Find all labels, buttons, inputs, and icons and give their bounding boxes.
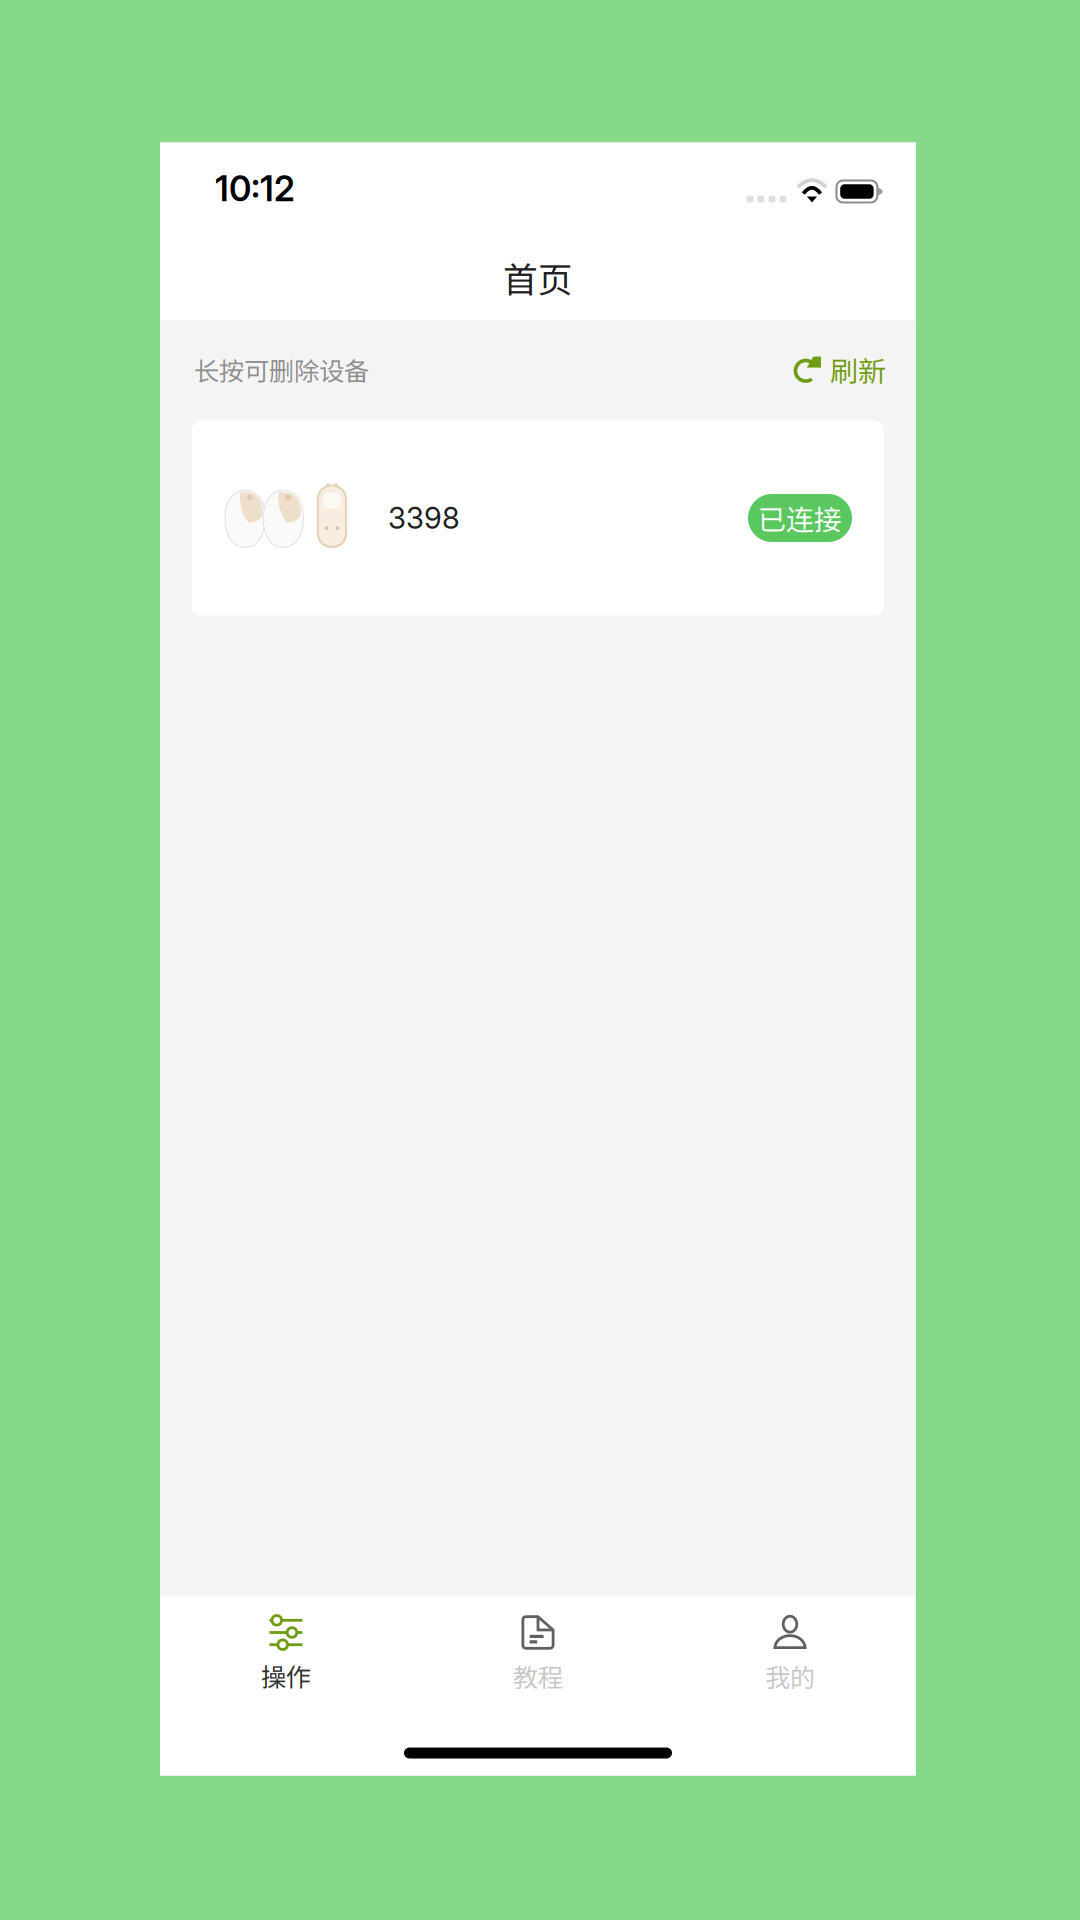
staticText: 首页 [503,252,573,303]
staticText: 我的 [765,1657,815,1694]
button[interactable]: 教程 [412,1615,664,1694]
staticText: 教程 [513,1657,563,1694]
staticText: 刷新 [830,349,886,390]
staticText: 操作 [261,1657,311,1694]
staticText: 长按可删除设备 [194,351,369,388]
staticText: 已连接 [758,498,842,538]
button[interactable]: 我的 [664,1615,916,1694]
button[interactable]: 刷新 [793,349,886,390]
button[interactable]: 3398 [192,420,884,615]
staticText: 10:12 [215,168,295,209]
button[interactable]: 操作 [160,1616,412,1694]
staticText: 3398 [388,500,460,536]
